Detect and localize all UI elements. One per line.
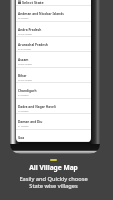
staticText: Daman and Diu (18, 120, 43, 124)
staticText: 5616 Villages (18, 48, 31, 51)
button[interactable]: Open navigation menu (16, 0, 91, 5)
button[interactable]: Bihar (16, 68, 91, 83)
staticText: 24 Villages (18, 94, 29, 97)
staticText: Bihar (18, 74, 27, 78)
button[interactable]: Chandigarh (16, 83, 91, 99)
button[interactable]: Daman and Diu (16, 114, 91, 130)
button[interactable]: Arunachal Pradesh (16, 37, 91, 52)
staticText: All Village Map (29, 163, 78, 172)
staticText: Select State (22, 0, 44, 5)
staticText: 26395 Villages (18, 63, 33, 66)
staticText: 70 Villages (18, 110, 29, 113)
button[interactable]: Andman and Nicobar Islands (16, 6, 91, 22)
staticText: 38 Villages (18, 17, 29, 20)
staticText: 31 Villages (18, 125, 29, 128)
staticText: Arunachal Pradesh (18, 43, 48, 47)
staticText: 45103 Villages (18, 79, 33, 82)
other: Open navigation menu (18, 0, 21, 3)
staticText: Easily and Quickly choose State wise vil… (19, 175, 88, 190)
staticText: Chandigarh (18, 89, 37, 93)
button[interactable]: Assam (16, 52, 91, 68)
staticText: Goa (18, 136, 25, 140)
button[interactable]: Dadra and Nagar Haveli (16, 99, 91, 114)
button[interactable]: Goa (16, 130, 91, 142)
staticText: Dadra and Nagar Haveli (18, 105, 56, 109)
button[interactable]: Andra Pradesh (16, 22, 91, 37)
staticText: Andman and Nicobar Islands (18, 12, 64, 16)
staticText: Assam (18, 58, 29, 62)
staticText: 28123 Villages (18, 33, 33, 36)
staticText: Andra Pradesh (18, 28, 42, 32)
